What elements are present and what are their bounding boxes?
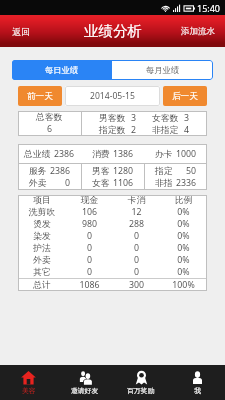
- staticText: 0%: [160, 206, 207, 218]
- button[interactable]: 后一天: [163, 86, 207, 106]
- staticText: 0%: [160, 266, 207, 278]
- staticText: 3: [184, 112, 190, 124]
- staticText: 外卖: [29, 178, 47, 189]
- staticText: 男客数: [99, 113, 126, 124]
- staticText: 返回: [12, 26, 30, 37]
- staticText: 0: [66, 254, 113, 266]
- staticText: 项目: [18, 195, 66, 206]
- staticText: 0%: [160, 230, 207, 242]
- button[interactable]: 返回: [4, 21, 38, 42]
- staticText: 2336: [176, 177, 197, 189]
- staticText: 0: [66, 230, 113, 242]
- staticText: 卡消: [113, 195, 160, 206]
- staticText: 6: [47, 123, 53, 135]
- staticText: 15:40: [197, 2, 221, 14]
- staticText: 指定: [155, 166, 173, 177]
- staticText: 业绩分析: [84, 22, 142, 40]
- staticText: 0%: [160, 254, 207, 266]
- staticText: 2: [131, 124, 137, 136]
- staticText: 现金: [66, 195, 113, 206]
- button[interactable]: 每月业绩: [112, 60, 213, 80]
- staticText: 比例: [160, 195, 207, 206]
- staticText: 女客: [92, 178, 110, 189]
- staticText: 0%: [160, 218, 207, 230]
- staticText: 1086: [66, 279, 113, 291]
- staticText: 百万奖励: [127, 386, 155, 395]
- staticText: 其它: [18, 267, 66, 278]
- staticText: 非指: [155, 178, 173, 189]
- staticText: 洗剪吹: [18, 207, 66, 218]
- staticText: 12: [113, 206, 160, 218]
- staticText: 邀请好友: [71, 386, 99, 395]
- staticText: 前一天: [27, 91, 53, 102]
- staticText: 1386: [113, 148, 134, 160]
- staticText: 消费: [92, 149, 110, 160]
- staticText: 2014-05-15: [90, 90, 135, 102]
- staticText: 每月业绩: [146, 65, 180, 75]
- staticText: 0%: [160, 242, 207, 254]
- button[interactable]: 2014-05-15: [65, 86, 160, 106]
- staticText: 3: [131, 112, 137, 124]
- staticText: 1106: [113, 177, 134, 189]
- staticText: 男客: [92, 166, 110, 177]
- button[interactable]: Home: [0, 365, 57, 400]
- staticText: 服务: [29, 166, 47, 177]
- staticText: 添加流水: [181, 26, 215, 37]
- staticText: 染发: [18, 231, 66, 242]
- staticText: 总计: [18, 280, 66, 291]
- staticText: 2386: [54, 148, 75, 160]
- staticText: 总客数: [36, 112, 63, 123]
- staticText: 护法: [18, 243, 66, 254]
- staticText: 0: [65, 177, 71, 189]
- staticText: 总业绩: [24, 149, 51, 160]
- staticText: 每日业绩: [45, 65, 79, 75]
- staticText: 0: [113, 254, 160, 266]
- staticText: 50: [186, 165, 197, 177]
- staticText: 烫发: [18, 219, 66, 230]
- button[interactable]: 每日业绩: [12, 60, 112, 80]
- button[interactable]: 前一天: [18, 86, 62, 106]
- button[interactable]: Rewards: [113, 365, 169, 400]
- staticText: 0: [113, 266, 160, 278]
- staticText: 女客数: [152, 113, 179, 124]
- staticText: 美容: [22, 386, 36, 395]
- staticText: 980: [66, 218, 113, 230]
- staticText: 0: [113, 230, 160, 242]
- staticText: 2386: [50, 165, 71, 177]
- button[interactable]: Profile: [169, 365, 225, 400]
- staticText: 办卡: [155, 149, 173, 160]
- staticText: 外卖: [18, 255, 66, 266]
- staticText: 0: [66, 242, 113, 254]
- button[interactable]: Invite friends: [57, 365, 113, 400]
- staticText: 指定数: [99, 125, 126, 136]
- staticText: 后一天: [172, 91, 198, 102]
- staticText: 1280: [113, 165, 134, 177]
- staticText: 我: [194, 386, 201, 395]
- staticText: 288: [113, 218, 160, 230]
- staticText: 4: [184, 124, 190, 136]
- staticText: 0: [113, 242, 160, 254]
- staticText: 非指定: [152, 125, 179, 136]
- staticText: 1000: [176, 148, 197, 160]
- staticText: 100%: [160, 279, 207, 291]
- staticText: 0: [66, 266, 113, 278]
- staticText: 300: [113, 279, 160, 291]
- button[interactable]: 添加流水: [175, 21, 221, 42]
- staticText: 106: [66, 206, 113, 218]
